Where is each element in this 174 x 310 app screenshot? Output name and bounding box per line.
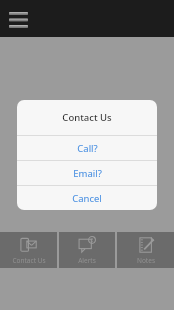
staticText: Email? bbox=[73, 167, 102, 180]
staticText: Cancel bbox=[72, 192, 102, 205]
staticText: Contact Us bbox=[62, 111, 112, 124]
staticText: Alerts bbox=[78, 256, 96, 265]
button[interactable]: Alerts bbox=[59, 232, 115, 268]
button[interactable]: Notes bbox=[117, 232, 174, 268]
staticText: Contact Us bbox=[12, 256, 46, 265]
button[interactable]: Call? bbox=[17, 136, 157, 160]
button[interactable]: Cancel bbox=[17, 186, 157, 210]
button[interactable]: Email? bbox=[17, 161, 157, 185]
staticText: Call? bbox=[77, 142, 98, 155]
button[interactable]: Contact Us bbox=[0, 232, 57, 268]
button[interactable]: Menu bbox=[9, 12, 28, 28]
staticText: Notes bbox=[137, 256, 155, 265]
